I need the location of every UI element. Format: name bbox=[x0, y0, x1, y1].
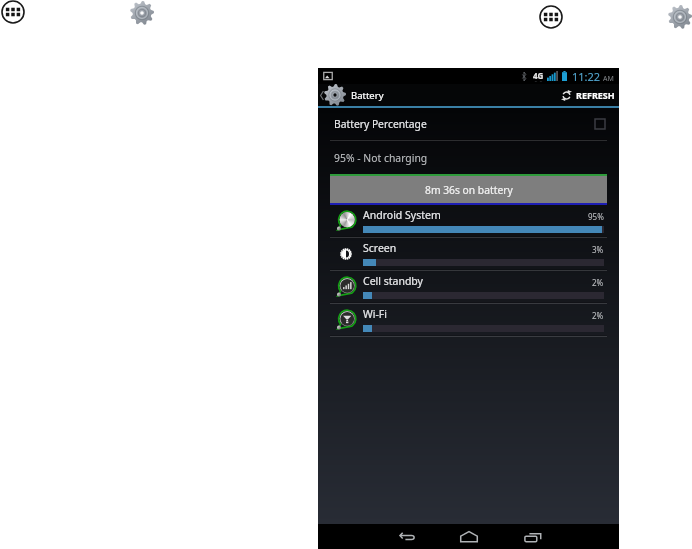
staticText: Cell standby bbox=[363, 274, 423, 288]
staticText: 4G bbox=[533, 70, 544, 81]
staticText: Battery Percentage bbox=[334, 117, 427, 131]
staticText: 95% bbox=[588, 211, 604, 222]
staticText: 2% bbox=[592, 277, 604, 288]
button[interactable]: Back bbox=[385, 524, 429, 549]
staticText: 2% bbox=[592, 310, 604, 321]
button[interactable]: Settings bbox=[130, 1, 154, 25]
staticText: AM bbox=[603, 74, 614, 84]
staticText: Wi-Fi bbox=[363, 307, 388, 321]
button[interactable]: All apps bbox=[1, 0, 25, 24]
button[interactable]: REFRESH bbox=[561, 84, 619, 106]
staticText: 3% bbox=[592, 244, 604, 255]
button[interactable]: Android System bbox=[318, 205, 619, 236]
button[interactable]: Home bbox=[447, 524, 491, 549]
button[interactable]: Settings bbox=[324, 84, 346, 106]
staticText: 11:22 bbox=[572, 69, 601, 84]
button[interactable]: Settings bbox=[318, 84, 384, 106]
staticText: REFRESH bbox=[576, 89, 615, 101]
button[interactable]: Settings bbox=[668, 5, 692, 29]
button[interactable]: Cell standby bbox=[318, 271, 619, 302]
button[interactable]: All apps bbox=[539, 5, 563, 29]
staticText: Android System bbox=[363, 208, 441, 222]
staticText: Battery bbox=[351, 89, 384, 102]
staticText: 95% - Not charging bbox=[334, 151, 428, 165]
button[interactable]: Wi-Fi bbox=[318, 304, 619, 335]
staticText: Screen bbox=[363, 241, 397, 255]
staticText: 8m 36s on battery bbox=[425, 183, 513, 197]
button[interactable]: Recent apps bbox=[511, 524, 555, 549]
button[interactable]: Battery Percentage bbox=[318, 108, 619, 139]
button[interactable]: Screen bbox=[318, 238, 619, 269]
